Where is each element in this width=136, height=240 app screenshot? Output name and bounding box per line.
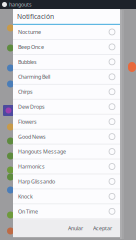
staticText: On Time bbox=[18, 208, 38, 215]
button[interactable]: Hangouts Message bbox=[13, 144, 120, 159]
button[interactable]: Flowers bbox=[13, 114, 120, 129]
staticText: Harp Glissando bbox=[18, 178, 55, 185]
button[interactable]: Harmonics bbox=[13, 159, 120, 174]
staticText: Bubbles bbox=[18, 58, 37, 65]
button[interactable]: Charming Bell bbox=[13, 70, 120, 85]
button[interactable]: Chirps bbox=[13, 85, 120, 99]
staticText: Aceptar bbox=[93, 225, 112, 232]
staticText: Knock bbox=[18, 193, 33, 200]
button[interactable]: On Time bbox=[13, 204, 120, 219]
button[interactable]: Anular bbox=[63, 222, 88, 235]
button[interactable]: Harp Glissando bbox=[13, 174, 120, 189]
staticText: Good News bbox=[18, 133, 46, 140]
staticText: Dew Drops bbox=[18, 103, 45, 110]
button[interactable]: Beep Once bbox=[13, 40, 120, 55]
staticText: Harmonics bbox=[18, 163, 45, 170]
staticText: Beep Once bbox=[18, 43, 44, 50]
staticText: Charming Bell bbox=[18, 73, 50, 80]
staticText: Chirps bbox=[18, 88, 33, 95]
button[interactable]: Dew Drops bbox=[13, 100, 120, 114]
staticText: Anular bbox=[68, 225, 83, 232]
button[interactable]: Aceptar bbox=[88, 222, 117, 235]
staticText: Hangouts Message bbox=[18, 148, 66, 155]
button[interactable]: Nocturne bbox=[13, 25, 120, 40]
staticText: Nocturne bbox=[18, 28, 41, 35]
button[interactable]: Bubbles bbox=[13, 55, 120, 70]
button[interactable]: Good News bbox=[13, 129, 120, 144]
staticText: hangouts bbox=[9, 1, 32, 8]
staticText: Notificación bbox=[17, 12, 54, 21]
staticText: Flowers bbox=[18, 118, 37, 125]
button[interactable]: Knock bbox=[13, 189, 120, 204]
